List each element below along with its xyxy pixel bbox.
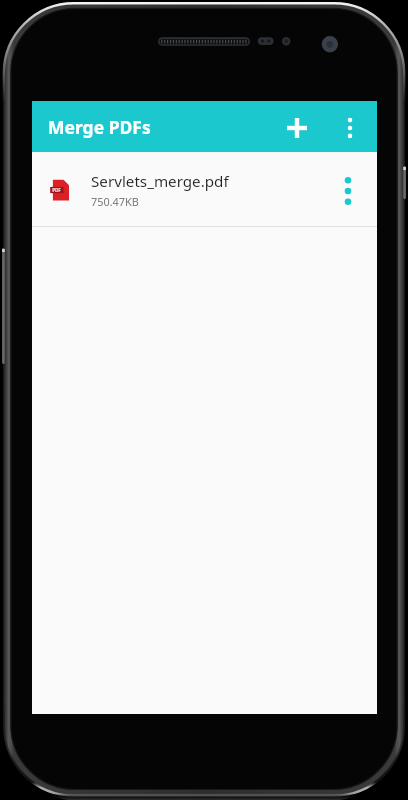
staticText: PDF [52,187,61,193]
button[interactable]: Add [273,104,321,152]
staticText: 750.47KB [91,194,139,209]
staticText: Servlets_merge.pdf [91,171,229,192]
button[interactable]: Item options [325,168,370,213]
button[interactable]: More options [329,107,370,148]
button[interactable]: PDF [32,152,377,227]
staticText: Merge PDFs [48,115,151,139]
